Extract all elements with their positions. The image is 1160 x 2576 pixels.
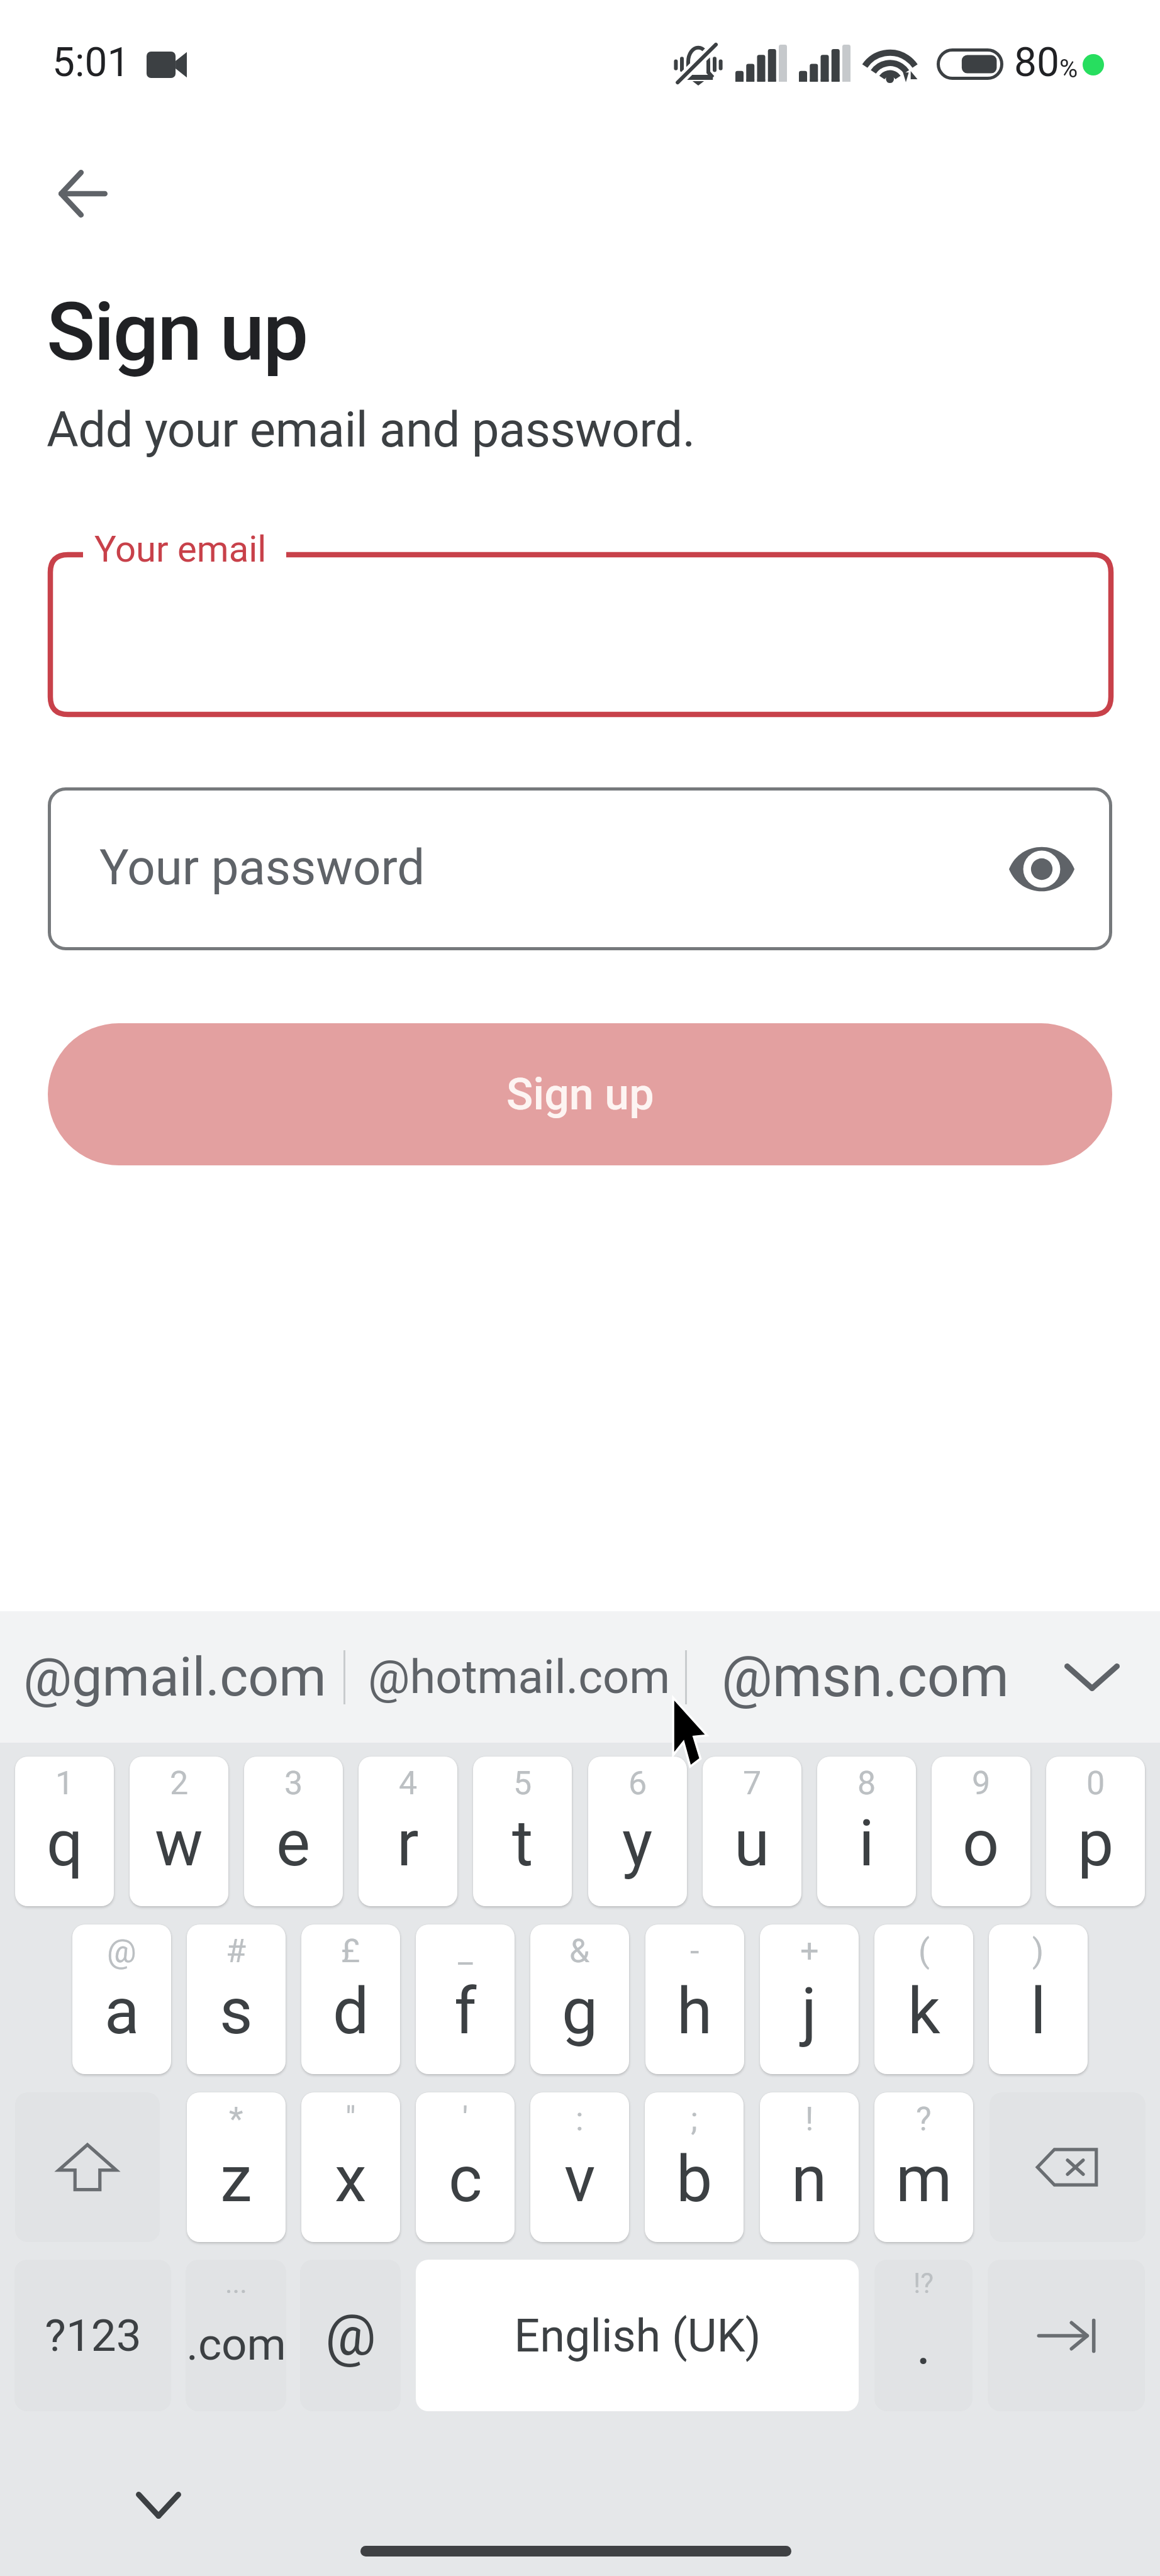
button[interactable]: ( — [874, 1924, 973, 2074]
staticText: f — [454, 1974, 477, 2049]
staticText: z — [220, 2141, 252, 2217]
button[interactable]: !? — [874, 2260, 973, 2411]
button[interactable]: @msn.com — [705, 1625, 1025, 1728]
button[interactable]: : — [530, 2092, 629, 2242]
staticText: u — [734, 1806, 770, 1881]
staticText: 5:01 — [52, 39, 130, 86]
staticText: v — [564, 2141, 596, 2217]
staticText: ) — [1032, 1932, 1044, 1970]
button[interactable]: English (UK) — [416, 2260, 859, 2411]
staticText: % — [1059, 54, 1078, 84]
staticText: k — [908, 1974, 940, 2049]
staticText: r — [397, 1806, 419, 1881]
button[interactable]: 5 — [473, 1757, 572, 1906]
button[interactable]: Shift — [15, 2092, 160, 2242]
staticText: 8 — [857, 1764, 876, 1802]
button[interactable]: ) — [989, 1924, 1088, 2074]
staticText: 7 — [743, 1764, 762, 1802]
button[interactable]: @gmail.com — [7, 1625, 343, 1728]
button[interactable]: Show password — [998, 825, 1086, 913]
button[interactable]: 4 — [359, 1757, 457, 1906]
button[interactable]: - — [645, 1924, 744, 2074]
button[interactable]: Enter — [988, 2260, 1145, 2411]
staticText: o — [962, 1806, 1000, 1881]
staticText: g — [562, 1974, 598, 2049]
button[interactable]: ... — [186, 2260, 286, 2411]
staticText: @gmail.com — [23, 1645, 326, 1709]
staticText: ? — [916, 2100, 932, 2138]
staticText: Sign up — [47, 285, 308, 379]
button[interactable]: ; — [645, 2092, 744, 2242]
staticText: Your password — [99, 839, 425, 896]
button[interactable]: & — [530, 1924, 629, 2074]
button[interactable]: 2 — [130, 1757, 228, 1906]
staticText: 4 — [399, 1764, 418, 1802]
staticText: & — [569, 1932, 590, 1970]
staticText: @ — [107, 1932, 137, 1970]
staticText: m — [896, 2141, 952, 2217]
button[interactable]: £ — [301, 1924, 400, 2074]
staticText: : — [576, 2100, 584, 2138]
button[interactable]: + — [760, 1924, 859, 2074]
staticText: e — [276, 1806, 311, 1881]
button[interactable]: _ — [416, 1924, 515, 2074]
staticText: 5 — [513, 1764, 532, 1802]
button[interactable]: More suggestions — [1044, 1629, 1140, 1725]
button[interactable]: 1 — [15, 1757, 114, 1906]
button[interactable]: Back — [35, 146, 131, 241]
button[interactable]: Backspace — [990, 2092, 1146, 2242]
staticText: h — [677, 1974, 713, 2049]
button[interactable]: ' — [416, 2092, 515, 2242]
staticText: n — [791, 2141, 827, 2217]
staticText: # — [226, 1932, 247, 1970]
button[interactable]: ? — [874, 2092, 973, 2242]
staticText: @msn.com — [722, 1644, 1009, 1710]
staticText: ?123 — [45, 2309, 142, 2362]
button[interactable]: 7 — [703, 1757, 801, 1906]
staticText: l — [1030, 1974, 1046, 2049]
button[interactable]: 8 — [817, 1757, 916, 1906]
staticText: ! — [805, 2100, 814, 2138]
staticText: ; — [691, 2100, 698, 2138]
button[interactable]: Hide keyboard — [121, 2467, 196, 2543]
staticText: s — [220, 1974, 253, 2049]
button[interactable]: 9 — [932, 1757, 1030, 1906]
button[interactable]: # — [187, 1924, 286, 2074]
staticText: 6 — [628, 1764, 647, 1802]
staticText: p — [1078, 1806, 1114, 1881]
staticText: b — [676, 2141, 713, 2217]
button[interactable]: 3 — [244, 1757, 343, 1906]
button[interactable] — [48, 552, 1112, 716]
staticText: t — [512, 1806, 533, 1881]
staticText: English (UK) — [514, 2309, 761, 2362]
button[interactable]: @ — [300, 2260, 401, 2411]
button[interactable]: 0 — [1046, 1757, 1145, 1906]
button[interactable]: Sign up — [48, 1023, 1112, 1165]
button[interactable]: * — [187, 2092, 286, 2242]
staticText: Add your email and password. — [47, 401, 695, 458]
staticText: @ — [325, 2302, 376, 2368]
staticText: x — [335, 2141, 367, 2217]
staticText: 2 — [170, 1764, 189, 1802]
button[interactable]: 6 — [588, 1757, 687, 1906]
staticText: £ — [341, 1932, 360, 1970]
staticText: a — [104, 1974, 140, 2049]
staticText: y — [622, 1806, 653, 1881]
staticText: ... — [225, 2267, 247, 2300]
staticText: Sign up — [506, 1069, 654, 1120]
staticText: i — [859, 1806, 874, 1881]
button[interactable]: ?123 — [14, 2260, 171, 2411]
staticText: Your email — [94, 528, 267, 570]
button[interactable] — [48, 787, 1112, 950]
button[interactable]: ! — [760, 2092, 859, 2242]
button[interactable]: @ — [72, 1924, 171, 2074]
staticText: @hotmail.com — [368, 1650, 671, 1704]
staticText: c — [449, 2141, 482, 2217]
staticText: !? — [913, 2267, 934, 2300]
staticText: 80 — [1014, 39, 1059, 86]
staticText: _ — [458, 1932, 473, 1970]
button[interactable]: " — [301, 2092, 400, 2242]
button[interactable]: @hotmail.com — [352, 1625, 687, 1728]
staticText: 1 — [55, 1764, 74, 1802]
staticText: 3 — [284, 1764, 303, 1802]
